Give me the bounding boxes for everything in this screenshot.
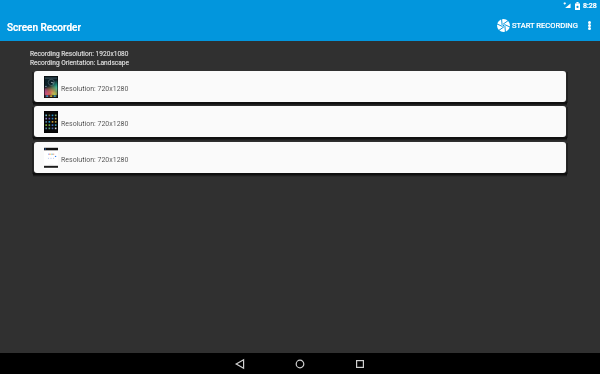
- button[interactable]: More options: [582, 15, 596, 35]
- button[interactable]: Resolution: 720x1280: [34, 106, 566, 137]
- staticText: START RECORDING: [512, 21, 578, 30]
- button[interactable]: Resolution: 720x1280: [34, 142, 566, 173]
- staticText: 8:28: [583, 2, 597, 10]
- button[interactable]: START RECORDING: [494, 16, 581, 35]
- staticText: Resolution: 720x1280: [61, 85, 129, 93]
- button[interactable]: Home: [270, 353, 330, 374]
- button[interactable]: Back: [210, 353, 270, 374]
- staticText: Resolution: 720x1280: [61, 156, 129, 164]
- button[interactable]: Recent apps: [330, 353, 390, 374]
- button[interactable]: Resolution: 720x1280: [34, 71, 566, 102]
- staticText: Recording Orientation: Landscape: [30, 59, 130, 67]
- staticText: Screen Recorder: [7, 22, 81, 34]
- staticText: Resolution: 720x1280: [61, 120, 129, 128]
- staticText: Recording Resolution: 1920x1080: [30, 50, 129, 58]
